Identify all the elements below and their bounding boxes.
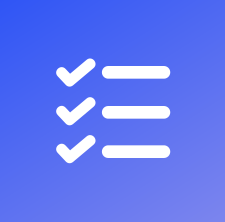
button[interactable]: Checklist item [56, 137, 170, 165]
button[interactable]: Checklist item [56, 98, 170, 126]
button[interactable]: Checklist item [56, 58, 170, 86]
